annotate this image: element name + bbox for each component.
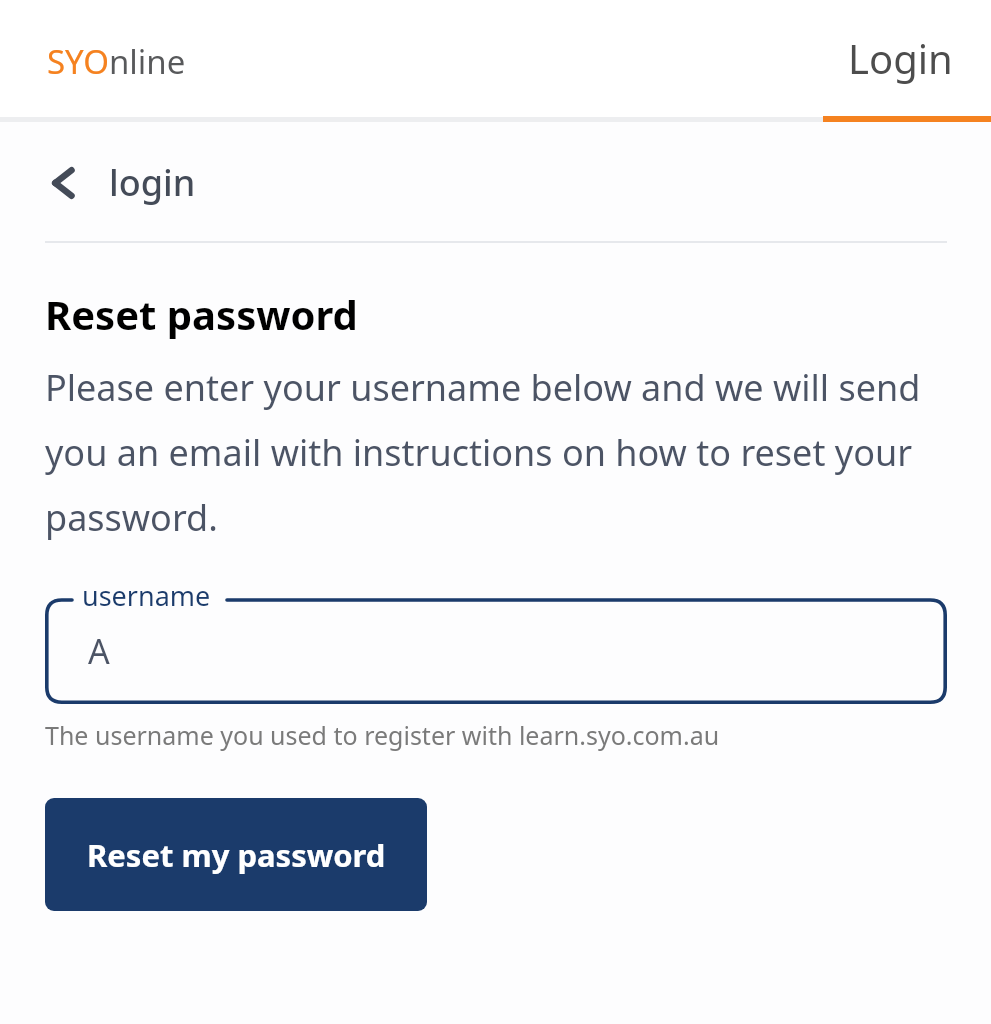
button[interactable]: username <box>45 578 947 704</box>
staticText: Reset password <box>45 287 358 341</box>
staticText: The username you used to register with l… <box>45 718 720 752</box>
button[interactable]: Login <box>848 0 991 122</box>
staticText: Reset my password <box>87 834 386 876</box>
other: Back <box>45 163 79 203</box>
staticText: SYOnline <box>47 39 186 84</box>
staticText: Login <box>848 31 953 85</box>
button[interactable]: Reset my password <box>45 798 427 911</box>
staticText: A <box>88 628 110 674</box>
staticText: login <box>109 158 196 207</box>
staticText: username <box>82 577 211 614</box>
button[interactable]: SYOnline <box>47 39 186 84</box>
button[interactable]: Back <box>45 154 214 211</box>
staticText: Please enter your username below and we … <box>45 363 946 542</box>
